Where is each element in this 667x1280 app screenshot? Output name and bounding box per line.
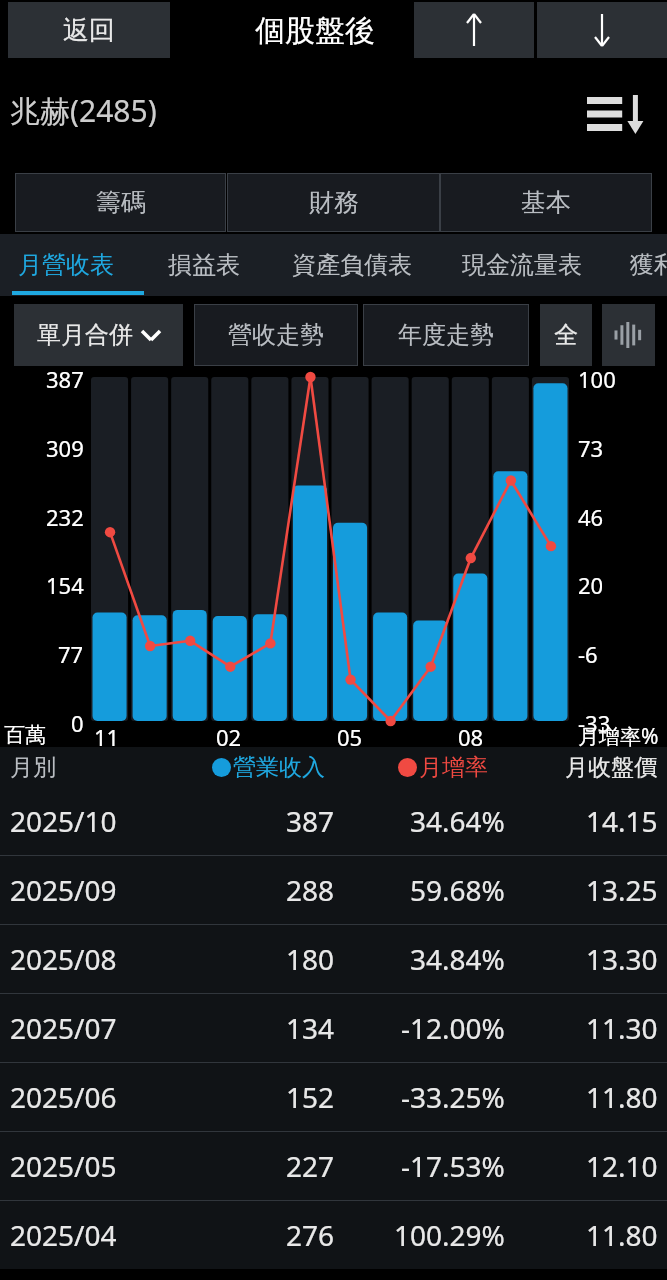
staticText: 基本	[521, 187, 571, 218]
staticText: 營業收入	[233, 753, 325, 782]
staticText: 月營收表	[18, 250, 114, 280]
button[interactable]: Sort	[572, 86, 658, 142]
staticText: 387	[46, 364, 84, 394]
staticText: 11.30	[586, 1009, 658, 1047]
button[interactable]: 資產負債表	[292, 234, 412, 296]
staticText: 月增率	[419, 753, 488, 782]
button[interactable]: 返回	[8, 2, 170, 58]
staticText: 14.15	[586, 802, 658, 840]
staticText: 73	[578, 433, 604, 463]
button[interactable]: 年度走勢	[363, 304, 529, 366]
staticText: 11	[94, 722, 120, 752]
staticText: 2025/08	[10, 940, 117, 978]
staticText: 11.80	[586, 1078, 658, 1116]
staticText: 財務	[309, 187, 359, 218]
staticText: 276	[286, 1216, 335, 1254]
staticText: -17.53%	[401, 1147, 505, 1185]
button[interactable]: 單月合併	[14, 304, 183, 366]
staticText: 02	[216, 722, 242, 752]
staticText: 12.10	[586, 1147, 658, 1185]
staticText: 全	[554, 320, 578, 350]
staticText: 2025/10	[10, 802, 117, 840]
staticText: 單月合併	[37, 320, 133, 350]
button[interactable]: 籌碼	[15, 173, 226, 232]
staticText: 152	[286, 1078, 335, 1116]
button[interactable]: 現金流量表	[462, 234, 582, 296]
staticText: 年度走勢	[398, 320, 494, 350]
staticText: 227	[286, 1147, 335, 1185]
staticText: 個股盤後	[255, 12, 375, 50]
staticText: 兆赫(2485)	[10, 90, 157, 131]
button[interactable]: 2025/09	[0, 856, 667, 924]
button[interactable]: Previous stock	[414, 2, 534, 58]
staticText: 20	[578, 570, 604, 600]
button[interactable]: Chart view	[602, 304, 655, 366]
button[interactable]: 2025/04	[0, 1201, 667, 1269]
button[interactable]: 基本	[440, 173, 652, 232]
staticText: 資產負債表	[292, 250, 412, 280]
button[interactable]: 月營收表	[18, 234, 114, 296]
staticText: 月收盤價	[565, 753, 657, 782]
staticText: 2025/06	[10, 1078, 117, 1116]
button[interactable]: 2025/05	[0, 1132, 667, 1200]
button[interactable]: 2025/08	[0, 925, 667, 993]
button[interactable]: 營收走勢	[194, 304, 358, 366]
staticText: 返回	[63, 14, 115, 47]
staticText: 11.80	[586, 1216, 658, 1254]
staticText: 34.64%	[410, 802, 505, 840]
staticText: 現金流量表	[462, 250, 582, 280]
staticText: 2025/09	[10, 871, 117, 909]
staticText: 77	[58, 639, 84, 669]
button[interactable]: 全	[540, 304, 592, 366]
staticText: 387	[286, 802, 335, 840]
staticText: 309	[46, 433, 84, 463]
button[interactable]: Next stock	[537, 2, 667, 58]
button[interactable]: 2025/06	[0, 1063, 667, 1131]
staticText: 05	[337, 722, 363, 752]
button[interactable]: 財務	[227, 173, 440, 232]
staticText: 13.25	[586, 871, 658, 909]
staticText: 損益表	[168, 250, 240, 280]
button[interactable]: 損益表	[168, 234, 240, 296]
staticText: 232	[46, 502, 84, 532]
staticText: 營收走勢	[228, 320, 324, 350]
staticText: 08	[458, 722, 484, 752]
staticText: 月增率%	[578, 722, 659, 751]
button[interactable]: 2025/07	[0, 994, 667, 1062]
staticText: 2025/04	[10, 1216, 117, 1254]
staticText: 100	[578, 364, 616, 394]
button[interactable]: 2025/10	[0, 787, 667, 855]
staticText: 13.30	[586, 940, 658, 978]
staticText: 100.29%	[394, 1216, 505, 1254]
button[interactable]: 獲利	[630, 234, 667, 296]
staticText: 46	[578, 502, 604, 532]
staticText: -33.25%	[401, 1078, 505, 1116]
staticText: -12.00%	[401, 1009, 505, 1047]
staticText: 288	[286, 871, 335, 909]
staticText: -6	[578, 639, 598, 669]
staticText: 154	[46, 570, 84, 600]
staticText: 月別	[10, 753, 56, 782]
staticText: -33	[578, 708, 611, 738]
staticText: 180	[286, 940, 335, 978]
staticText: 獲利	[630, 250, 667, 280]
staticText: 籌碼	[96, 187, 146, 218]
staticText: 2025/05	[10, 1147, 117, 1185]
staticText: 百萬	[4, 722, 46, 748]
staticText: 59.68%	[410, 871, 505, 909]
staticText: 2025/07	[10, 1009, 117, 1047]
staticText: 34.84%	[410, 940, 505, 978]
staticText: 0	[71, 708, 84, 738]
staticText: 134	[286, 1009, 335, 1047]
